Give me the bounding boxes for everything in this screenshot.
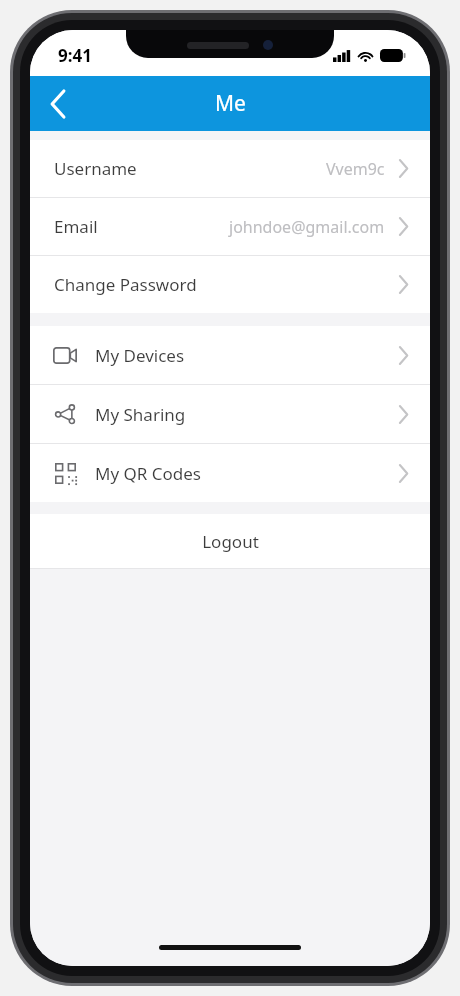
staticText: My Sharing [95, 403, 186, 426]
staticText: Email [54, 215, 98, 238]
staticText: Logout [202, 530, 259, 553]
staticText: Me [215, 89, 246, 118]
staticText: My QR Codes [95, 462, 201, 485]
button[interactable]: Email [30, 198, 430, 255]
button[interactable]: My Sharing [30, 385, 430, 443]
button[interactable]: Change Password [30, 256, 430, 313]
button[interactable]: My QR Codes [30, 444, 430, 502]
button[interactable]: Username [30, 140, 430, 197]
staticText: 9:41 [58, 44, 92, 67]
staticText: Username [54, 157, 137, 180]
button[interactable]: Logout [30, 514, 430, 568]
staticText: Vvem9c [326, 158, 385, 180]
button[interactable]: Back [30, 76, 86, 131]
button[interactable]: My Devices [30, 326, 430, 384]
staticText: johndoe@gmail.com [229, 216, 385, 238]
staticText: My Devices [95, 344, 185, 367]
staticText: Change Password [54, 273, 197, 296]
